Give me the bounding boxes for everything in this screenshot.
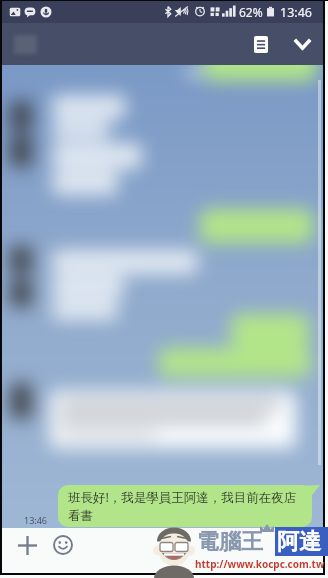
- button[interactable]: Notes: [247, 30, 275, 58]
- button[interactable]: Emoji: [46, 528, 80, 562]
- button[interactable]: 班長好!，我是學員王阿達，我目前在夜店看書: [58, 485, 312, 527]
- staticText: 13:46: [24, 514, 48, 526]
- staticText: 班長好!，我是學員王阿達，我目前在夜店看書: [68, 489, 306, 523]
- button[interactable]: Collapse: [288, 30, 316, 58]
- button[interactable]: Add attachment: [10, 528, 44, 562]
- staticText: 阿達: [277, 528, 321, 556]
- staticText: 電腦王: [197, 528, 263, 556]
- staticText: 62%: [239, 4, 263, 20]
- staticText: http://www.kocpc.com.tw: [195, 557, 325, 571]
- staticText: 13:46: [280, 4, 312, 21]
